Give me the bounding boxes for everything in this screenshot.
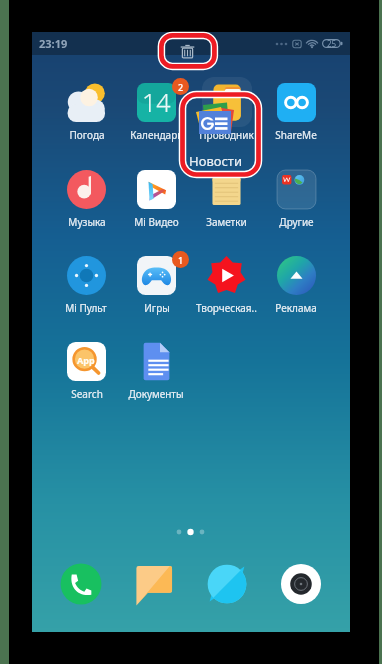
- button[interactable]: Документы: [121, 340, 191, 404]
- staticText: Документы: [128, 387, 184, 401]
- button[interactable]: Игры: [121, 254, 191, 318]
- staticText: Реклама: [275, 301, 317, 315]
- button[interactable]: Погода: [51, 81, 121, 145]
- staticText: Mi Пульт: [65, 301, 107, 315]
- staticText: App: [77, 354, 95, 366]
- staticText: 23:19: [39, 36, 68, 51]
- staticText: Mi Видео: [134, 215, 179, 229]
- button[interactable]: Phone: [57, 560, 105, 608]
- button[interactable]: Проводник: [191, 81, 261, 145]
- staticText: 14: [142, 85, 171, 119]
- staticText: ShareMe: [275, 128, 317, 142]
- staticText: Творческая..: [196, 301, 257, 315]
- button[interactable]: Другие: [261, 168, 331, 232]
- staticText: 2: [178, 81, 184, 93]
- staticText: Погода: [69, 128, 105, 142]
- button[interactable]: Музыка: [51, 168, 121, 232]
- staticText: Новости: [189, 152, 242, 170]
- button[interactable]: Реклама: [261, 254, 331, 318]
- staticText: Календарь: [130, 128, 183, 142]
- staticText: Проводник: [199, 128, 254, 142]
- button[interactable]: Delete: [160, 34, 215, 68]
- staticText: 25: [327, 38, 337, 49]
- staticText: Игры: [144, 301, 170, 315]
- staticText: 1: [178, 254, 184, 266]
- button[interactable]: Messages: [130, 560, 178, 608]
- staticText: Другие: [279, 215, 314, 229]
- button[interactable]: Творческая..: [191, 254, 261, 318]
- button[interactable]: 14: [121, 81, 191, 145]
- button[interactable]: Заметки: [191, 168, 261, 232]
- button[interactable]: Browser: [203, 560, 251, 608]
- button[interactable]: Mi Видео: [121, 168, 191, 232]
- staticText: Заметки: [206, 215, 247, 229]
- staticText: Search: [71, 387, 103, 401]
- button[interactable]: App: [51, 340, 121, 404]
- button[interactable]: Camera: [277, 560, 325, 608]
- button[interactable]: ShareMe: [261, 81, 331, 145]
- button[interactable]: Mi Пульт: [51, 254, 121, 318]
- staticText: Музыка: [68, 215, 106, 229]
